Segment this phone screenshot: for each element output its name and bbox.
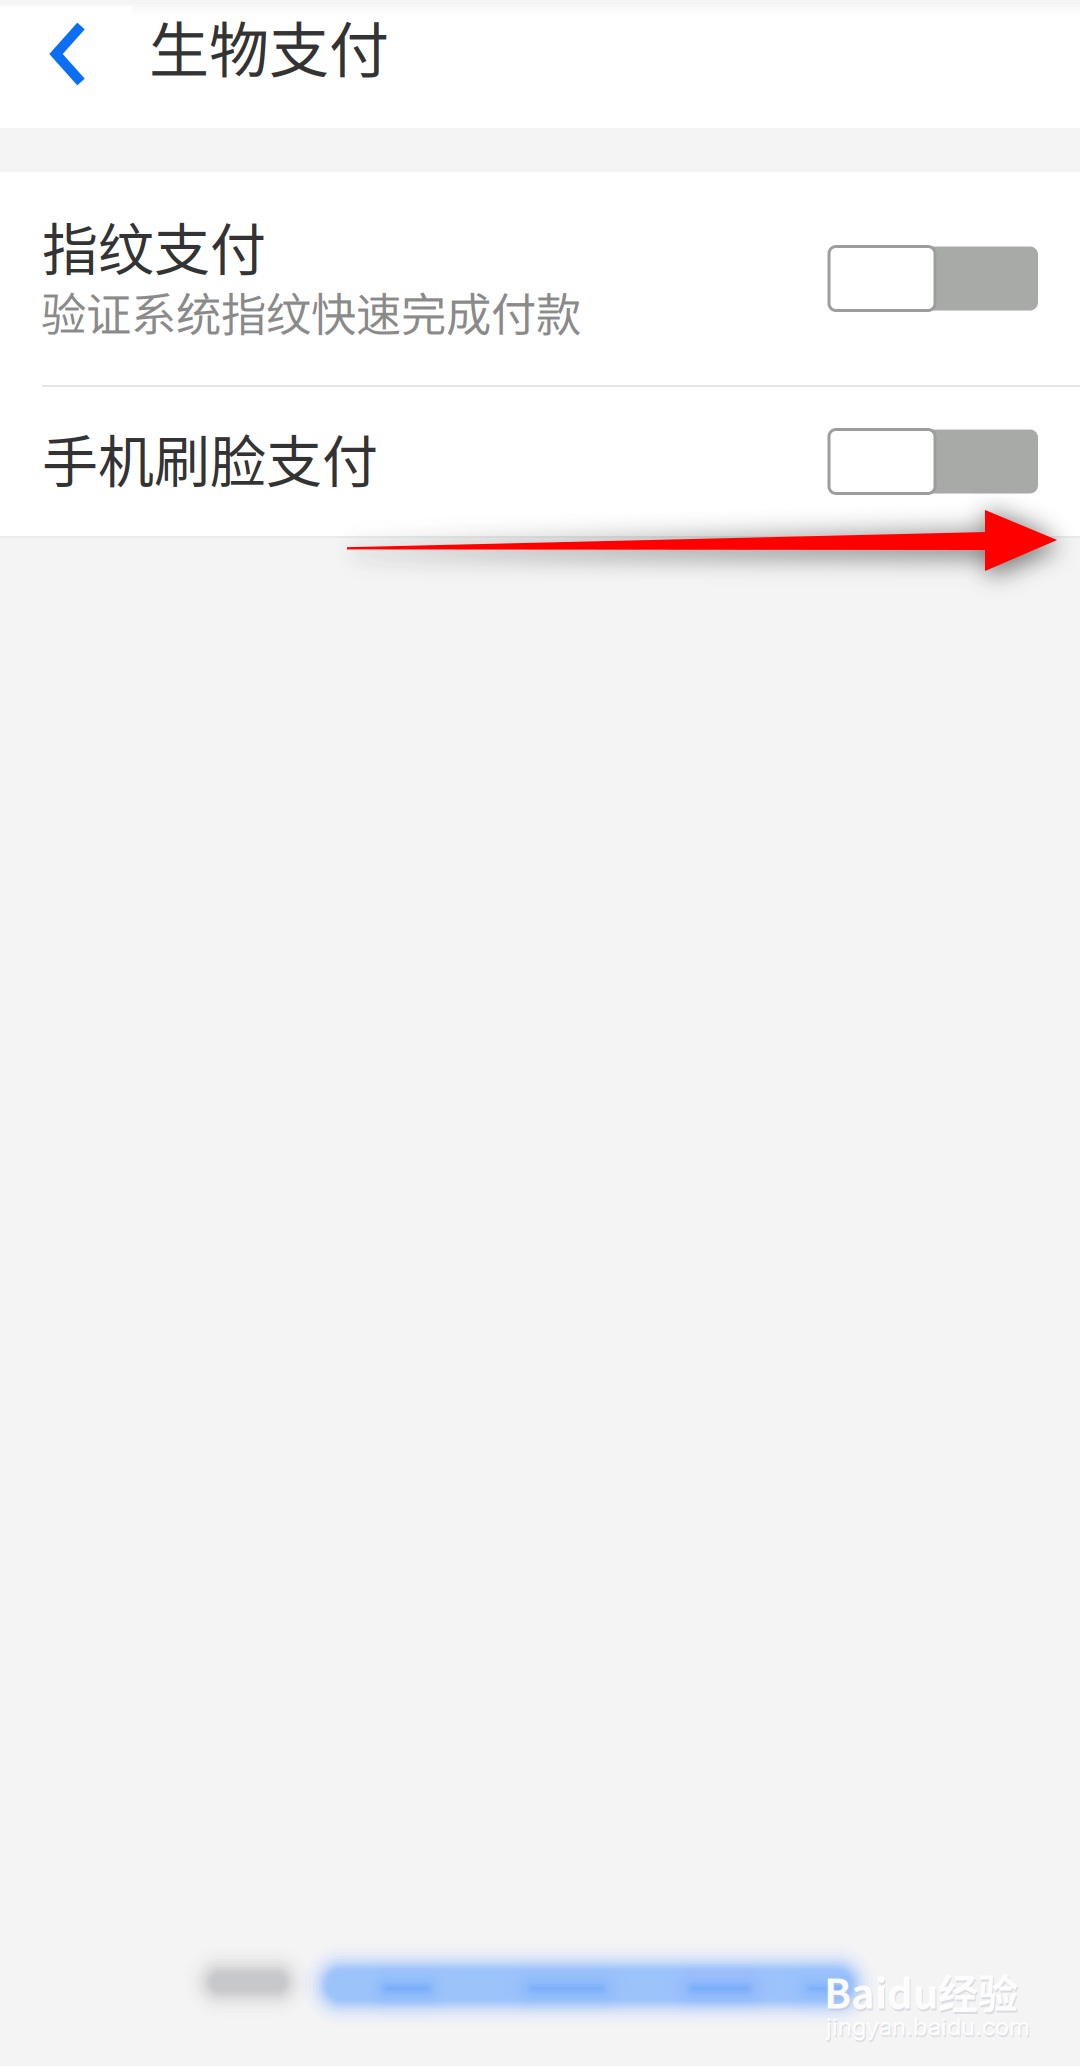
staticText: jingyan.baidu.com bbox=[826, 2012, 1030, 2041]
button[interactable]: 手机刷脸支付 bbox=[0, 387, 1080, 536]
staticText: 验证系统指纹快速完成付款 bbox=[41, 279, 581, 345]
staticText: 指纹支付 bbox=[42, 205, 266, 286]
staticText: Baidu经验 bbox=[825, 1964, 1019, 2022]
staticText: Baidu经验 bbox=[824, 1962, 1018, 2020]
button[interactable]: 指纹支付 bbox=[0, 172, 1080, 385]
staticText: 手机刷脸支付 bbox=[42, 417, 378, 498]
staticText: jingyan.baidu.com bbox=[827, 2014, 1031, 2043]
button[interactable]: 返回 bbox=[0, 6, 132, 128]
staticText: 生物支付 bbox=[149, 3, 389, 90]
